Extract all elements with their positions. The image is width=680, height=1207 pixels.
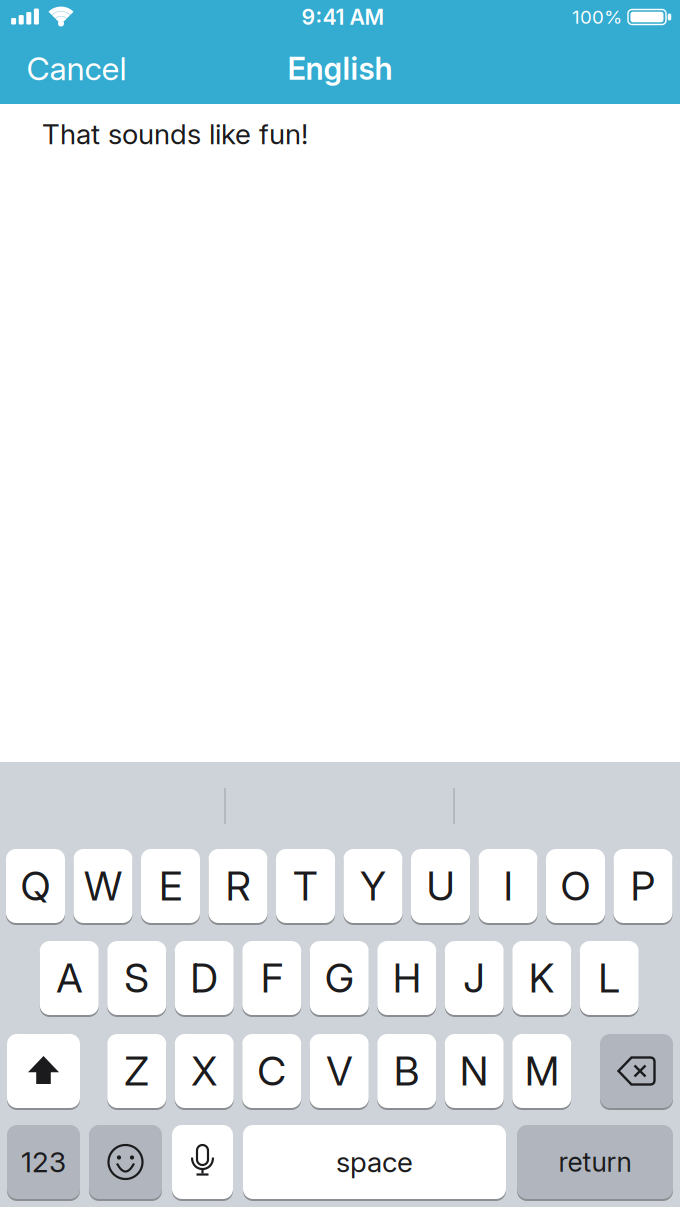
staticText: O xyxy=(560,862,590,910)
button[interactable]: X xyxy=(175,1033,234,1109)
staticText: 100% xyxy=(572,6,622,28)
staticText: I xyxy=(503,862,512,910)
staticText: U xyxy=(426,862,454,910)
button[interactable]: A xyxy=(40,940,99,1016)
button[interactable]: M xyxy=(512,1033,571,1109)
staticText: A xyxy=(56,954,82,1002)
staticText: 9:41 AM xyxy=(301,4,384,30)
staticText: Y xyxy=(360,862,386,910)
staticText: D xyxy=(190,954,218,1002)
button[interactable]: Y xyxy=(343,848,402,924)
staticText: That sounds like fun! xyxy=(42,117,308,150)
button[interactable]: O xyxy=(546,848,605,924)
staticText: Z xyxy=(124,1047,149,1095)
button[interactable]: P xyxy=(613,848,672,924)
staticText: V xyxy=(326,1047,352,1095)
button[interactable]: S xyxy=(107,940,166,1016)
button[interactable]: Q xyxy=(6,848,65,924)
button[interactable]: I xyxy=(478,848,537,924)
staticText: space xyxy=(336,1145,413,1178)
staticText: S xyxy=(124,954,149,1002)
button[interactable]: space xyxy=(243,1124,506,1200)
button[interactable]: W xyxy=(73,848,132,924)
button[interactable]: B xyxy=(377,1033,436,1109)
button[interactable]: F xyxy=(242,940,301,1016)
button[interactable]: Numbers xyxy=(7,1124,80,1200)
staticText: X xyxy=(191,1047,217,1095)
button[interactable]: Shift xyxy=(7,1033,80,1109)
staticText: G xyxy=(325,954,354,1002)
staticText: C xyxy=(257,1047,286,1095)
button[interactable]: Cancel xyxy=(26,50,126,87)
button[interactable]: return xyxy=(517,1124,673,1200)
button[interactable]: Dictate xyxy=(172,1124,233,1200)
staticText: M xyxy=(525,1047,559,1095)
staticText: B xyxy=(394,1047,420,1095)
staticText: return xyxy=(558,1146,631,1178)
staticText: K xyxy=(529,954,555,1002)
staticText: Cancel xyxy=(26,50,126,87)
button[interactable]: L xyxy=(580,940,639,1016)
staticText: Q xyxy=(20,862,50,910)
staticText: R xyxy=(225,862,250,910)
button[interactable]: Emoji xyxy=(89,1124,162,1200)
staticText: L xyxy=(598,954,620,1002)
staticText: T xyxy=(293,862,318,910)
staticText: N xyxy=(460,1047,489,1095)
button[interactable]: J xyxy=(445,940,504,1016)
staticText: P xyxy=(630,862,655,910)
staticText: E xyxy=(159,862,182,910)
button[interactable]: U xyxy=(411,848,470,924)
staticText: English xyxy=(287,50,392,87)
staticText: 123 xyxy=(21,1145,66,1178)
staticText: H xyxy=(393,954,421,1002)
button[interactable]: N xyxy=(445,1033,504,1109)
button[interactable]: D xyxy=(175,940,234,1016)
button[interactable]: C xyxy=(242,1033,301,1109)
staticText: J xyxy=(463,954,485,1002)
button[interactable]: H xyxy=(377,940,436,1016)
button[interactable]: G xyxy=(310,940,369,1016)
staticText: F xyxy=(261,954,283,1002)
button[interactable]: Delete xyxy=(600,1033,673,1109)
button[interactable]: E xyxy=(141,848,200,924)
button[interactable]: V xyxy=(310,1033,369,1109)
staticText: W xyxy=(84,862,122,910)
button[interactable]: K xyxy=(512,940,571,1016)
button[interactable]: T xyxy=(276,848,335,924)
button[interactable]: R xyxy=(208,848,267,924)
button[interactable]: Z xyxy=(107,1033,166,1109)
